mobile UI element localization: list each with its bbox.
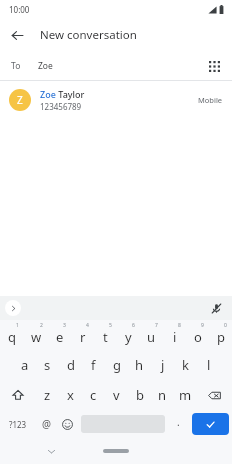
staticText: n xyxy=(158,386,167,404)
button[interactable]: Expand toolbar xyxy=(5,300,21,316)
button[interactable]: 1 xyxy=(0,320,24,350)
button[interactable]: a xyxy=(13,350,36,380)
staticText: Taylor xyxy=(56,88,85,100)
staticText: 5 xyxy=(109,322,112,329)
staticText: q xyxy=(8,328,16,346)
button[interactable]: m xyxy=(174,380,197,410)
button[interactable]: l xyxy=(197,350,220,380)
staticText: @ xyxy=(42,417,51,431)
button[interactable]: Back xyxy=(0,18,34,52)
button[interactable]: g xyxy=(105,350,128,380)
button[interactable]: 3 xyxy=(48,320,71,350)
staticText: 6 xyxy=(132,322,135,329)
staticText: z xyxy=(44,386,51,404)
staticText: 0 xyxy=(224,322,227,329)
staticText: p xyxy=(217,328,225,346)
staticText: Zoe xyxy=(40,88,56,100)
button[interactable]: Backspace xyxy=(197,380,232,410)
staticText: . xyxy=(177,415,180,429)
button[interactable]: . xyxy=(168,410,189,438)
staticText: To xyxy=(11,60,21,72)
button[interactable]: Dialpad xyxy=(202,54,226,78)
button[interactable]: 6 xyxy=(117,320,140,350)
button[interactable]: ?123 xyxy=(0,410,35,438)
staticText: l xyxy=(207,356,211,374)
staticText: m xyxy=(179,386,192,404)
button[interactable]: 9 xyxy=(186,320,209,350)
staticText: r xyxy=(80,328,86,346)
staticText: i xyxy=(173,328,177,346)
staticText: 8 xyxy=(178,322,181,329)
staticText: 9 xyxy=(201,322,204,329)
staticText: g xyxy=(113,356,121,374)
staticText: 10:00 xyxy=(9,4,30,15)
staticText: 4 xyxy=(86,322,89,329)
staticText: b xyxy=(136,386,144,404)
staticText: t xyxy=(103,328,108,346)
staticText: s xyxy=(44,356,51,374)
staticText: 7 xyxy=(155,322,158,329)
staticText: a xyxy=(21,356,29,374)
button[interactable]: v xyxy=(105,380,128,410)
button[interactable]: z xyxy=(36,380,59,410)
staticText: f xyxy=(91,356,96,374)
staticText: o xyxy=(194,328,202,346)
staticText: k xyxy=(182,356,189,374)
button[interactable]: n xyxy=(151,380,174,410)
button[interactable]: Voice input muted xyxy=(207,299,225,317)
button[interactable]: f xyxy=(82,350,105,380)
button[interactable]: k xyxy=(174,350,197,380)
staticText: c xyxy=(90,386,97,404)
button[interactable]: Z xyxy=(0,81,232,119)
button[interactable]: Shift xyxy=(0,380,36,410)
button[interactable]: Home xyxy=(103,449,129,453)
button[interactable]: Emoji xyxy=(57,410,78,438)
button[interactable]: 5 xyxy=(94,320,117,350)
staticText: y xyxy=(125,328,132,346)
staticText: Zoe xyxy=(38,60,53,72)
staticText: 3 xyxy=(63,322,66,329)
staticText: 123456789 xyxy=(40,101,82,112)
button[interactable]: j xyxy=(151,350,174,380)
staticText: h xyxy=(135,356,144,374)
button[interactable]: h xyxy=(128,350,151,380)
button[interactable]: Send xyxy=(192,413,229,435)
button[interactable]: s xyxy=(36,350,59,380)
staticText: 1 xyxy=(16,322,19,329)
staticText: x xyxy=(67,386,74,404)
staticText: v xyxy=(113,386,120,404)
button[interactable]: 7 xyxy=(140,320,163,350)
button[interactable]: @ xyxy=(35,410,57,438)
button[interactable]: 4 xyxy=(71,320,94,350)
staticText: u xyxy=(147,328,156,346)
staticText: ?123 xyxy=(9,419,27,430)
button[interactable]: d xyxy=(59,350,82,380)
button[interactable]: 8 xyxy=(163,320,186,350)
button[interactable]: b xyxy=(128,380,151,410)
staticText: New conversation xyxy=(40,27,137,43)
button[interactable]: c xyxy=(82,380,105,410)
staticText: j xyxy=(161,356,165,374)
button[interactable]: 2 xyxy=(24,320,48,350)
staticText: Z xyxy=(17,93,23,107)
button[interactable]: 0 xyxy=(209,320,232,350)
staticText: Mobile xyxy=(198,95,223,105)
button[interactable]: Hide keyboard xyxy=(42,442,60,460)
staticText: 2 xyxy=(40,322,43,329)
staticText: e xyxy=(56,328,64,346)
staticText: w xyxy=(31,328,42,346)
button[interactable]: x xyxy=(59,380,82,410)
staticText: d xyxy=(67,356,75,374)
